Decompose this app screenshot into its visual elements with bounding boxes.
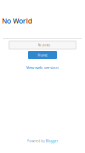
staticText: Powered by — [27, 139, 44, 143]
staticText: No World — [2, 16, 32, 26]
staticText: Blogger — [46, 139, 58, 143]
button[interactable]: Blogger — [46, 138, 58, 144]
staticText: Home — [37, 52, 47, 58]
button[interactable]: View web version — [26, 64, 59, 71]
staticText: View web version — [26, 65, 59, 70]
staticText: No posts. — [37, 43, 50, 47]
button[interactable]: Home — [28, 51, 57, 59]
